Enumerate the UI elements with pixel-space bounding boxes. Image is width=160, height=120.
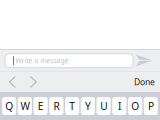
staticText: U [100,99,107,113]
staticText: T [69,99,75,113]
button[interactable]: Previous field [2,72,23,92]
button[interactable]: U [96,97,111,115]
staticText: I [118,99,121,113]
staticText: O [131,99,139,113]
staticText: Y [85,99,91,113]
button[interactable]: Done [130,72,159,92]
button[interactable]: T [65,97,79,115]
button[interactable]: P [144,97,158,115]
button[interactable]: R [49,97,63,115]
button[interactable]: W [18,97,32,115]
button[interactable]: O [128,97,142,115]
button[interactable]: Y [81,97,95,115]
staticText: E [38,99,44,113]
staticText: Write a message [15,56,68,65]
staticText: W [20,99,29,113]
button[interactable]: Next field [23,72,44,92]
button[interactable]: Q [2,97,16,115]
staticText: Q [5,99,13,113]
button[interactable]: Send [134,51,154,70]
staticText: P [148,99,154,113]
staticText: R [53,99,59,113]
button[interactable]: I [112,97,126,115]
staticText: Done [134,76,155,88]
button[interactable]: E [33,97,48,115]
